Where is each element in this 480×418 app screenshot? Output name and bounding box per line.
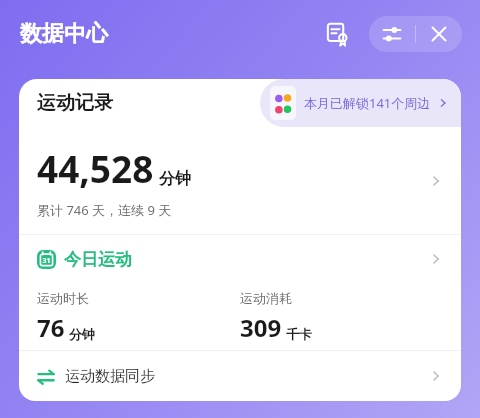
button[interactable]: 44,528 (19, 127, 461, 234)
staticText: 309 (240, 311, 282, 344)
staticText: 分钟 (159, 169, 191, 189)
button[interactable]: 运动数据同步 (19, 351, 461, 401)
button[interactable]: 本月已解锁141个周边 (260, 79, 461, 127)
staticText: 数据中心 (20, 20, 108, 48)
button[interactable]: Certificate (317, 14, 357, 54)
staticText: 运动记录 (37, 91, 113, 115)
staticText: 76 (37, 311, 65, 344)
button[interactable]: 31 (19, 235, 461, 283)
staticText: 运动数据同步 (65, 367, 155, 386)
staticText: 分钟 (69, 326, 95, 342)
staticText: 44,528 (37, 143, 154, 193)
button[interactable]: Close (416, 16, 462, 52)
staticText: 千卡 (286, 326, 312, 342)
staticText: 31 (42, 256, 51, 266)
button[interactable]: Settings (369, 16, 415, 52)
staticText: 运动消耗 (240, 290, 292, 306)
staticText: 本月已解锁141个周边 (304, 94, 431, 112)
staticText: 今日运动 (64, 249, 132, 270)
staticText: 运动时长 (37, 290, 89, 306)
staticText: 累计 746 天，连续 9 天 (37, 201, 172, 219)
